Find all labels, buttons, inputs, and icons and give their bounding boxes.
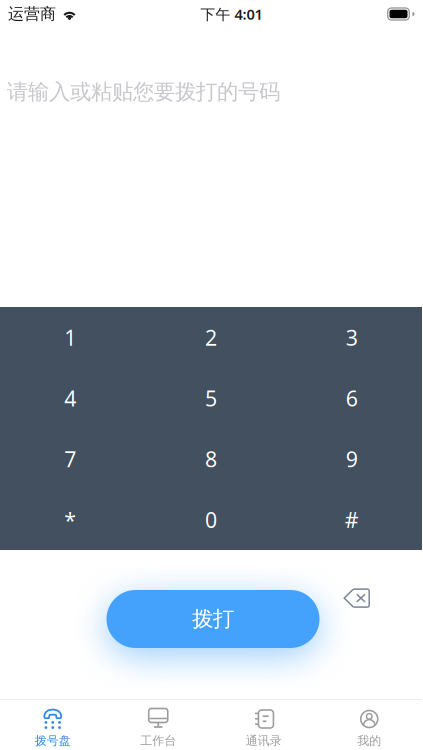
staticText: 4 [64, 384, 76, 412]
button[interactable]: 拨打 [106, 590, 319, 648]
staticText: # [345, 505, 359, 534]
button[interactable]: 通讯录 [211, 699, 316, 750]
staticText: 3 [346, 323, 358, 351]
staticText: 9 [346, 445, 358, 473]
button[interactable]: 2 [141, 307, 281, 368]
button[interactable]: 0 [141, 489, 281, 550]
staticText: * [64, 505, 76, 534]
staticText: 7 [64, 445, 76, 473]
staticText: 工作台 [140, 733, 176, 748]
staticText: 0 [205, 505, 217, 534]
button[interactable]: 4 [0, 368, 141, 429]
staticText: 8 [205, 445, 217, 473]
staticText: 请输入或粘贴您要拨打的号码 [7, 79, 280, 105]
button[interactable]: 8 [141, 428, 281, 489]
button[interactable]: 我的 [316, 699, 422, 750]
staticText: 5 [205, 384, 217, 412]
button[interactable]: # [281, 489, 422, 550]
staticText: 1 [64, 323, 76, 351]
button[interactable]: 6 [281, 368, 422, 429]
staticText: 运营商 [8, 4, 56, 24]
button[interactable]: 删除 [343, 587, 371, 608]
button[interactable]: * [0, 489, 141, 550]
button[interactable]: 工作台 [105, 699, 211, 750]
staticText: 拨号盘 [35, 733, 71, 748]
staticText: 6 [346, 384, 358, 412]
button[interactable]: 拨号盘 [0, 699, 105, 750]
button[interactable]: 1 [0, 307, 141, 368]
staticText: 拨打 [192, 606, 234, 632]
staticText: 通讯录 [246, 733, 282, 748]
button[interactable]: 7 [0, 428, 141, 489]
button[interactable]: 5 [141, 368, 281, 429]
button[interactable]: 9 [281, 428, 422, 489]
staticText: 下午 4:01 [200, 4, 262, 24]
staticText: 2 [205, 323, 217, 351]
staticText: 我的 [357, 733, 381, 748]
button[interactable]: 3 [281, 307, 422, 368]
